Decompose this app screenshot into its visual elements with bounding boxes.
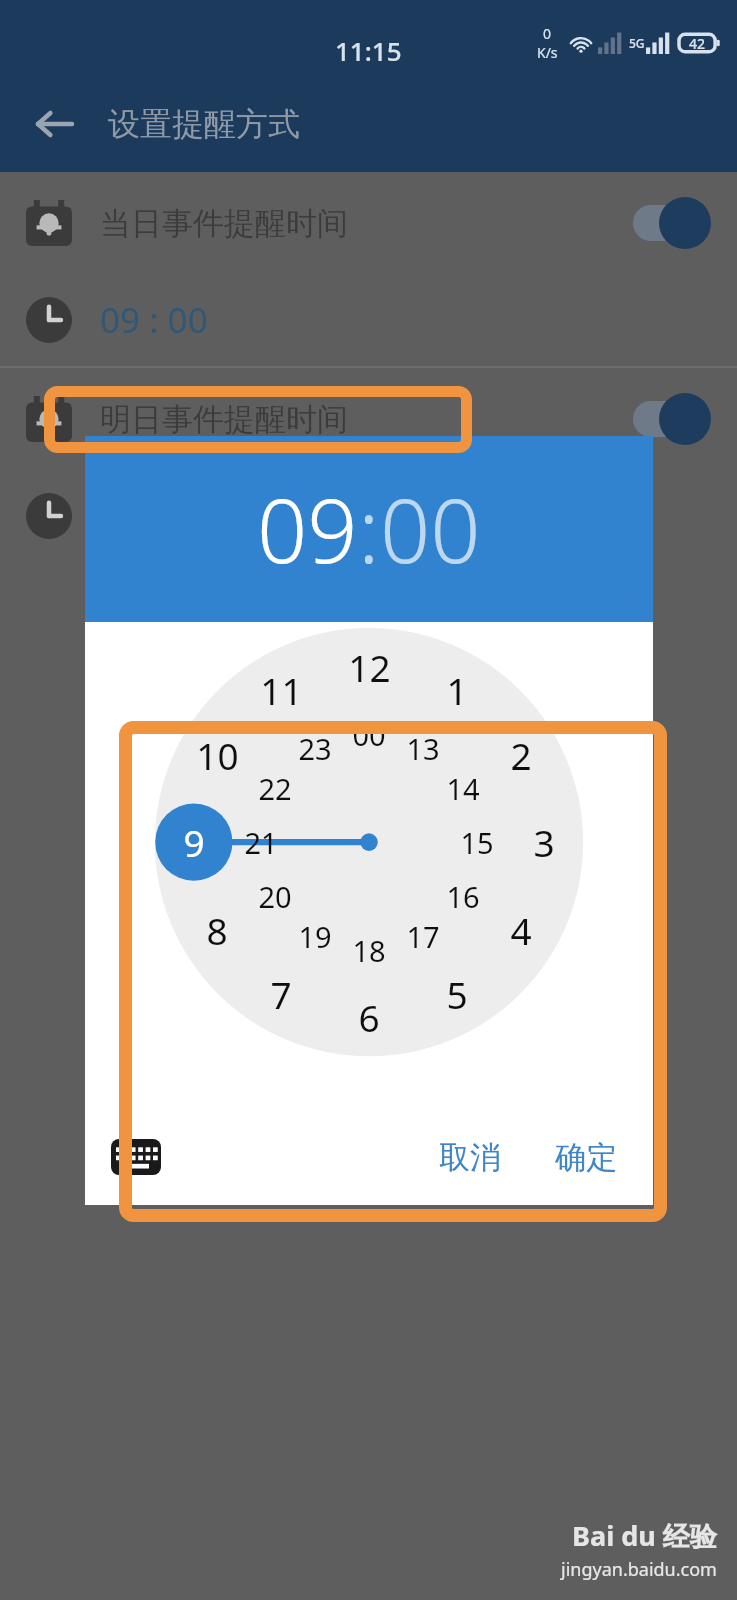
button[interactable]: 确定: [541, 1126, 631, 1189]
button[interactable]: 22: [239, 762, 311, 814]
button[interactable]: 7: [245, 964, 317, 1024]
staticText: 42: [689, 34, 706, 53]
button[interactable]: 3: [508, 812, 580, 872]
button[interactable]: 09 : 00: [0, 274, 737, 366]
button[interactable]: 20: [239, 870, 311, 922]
staticText: 11: [260, 665, 303, 715]
staticText: 16: [446, 877, 480, 916]
staticText: 21: [244, 823, 278, 862]
staticText: Bai du 经验: [572, 1517, 717, 1554]
staticText: 11:15: [335, 33, 402, 68]
staticText: 0: [543, 24, 552, 43]
staticText: :: [358, 469, 380, 589]
staticText: 3: [533, 817, 555, 867]
staticText: 10: [196, 730, 239, 780]
staticText: 8: [206, 905, 228, 955]
staticText: 13: [406, 729, 440, 768]
button[interactable]: 取消: [425, 1126, 515, 1189]
staticText: 18: [352, 931, 386, 970]
staticText: 17: [406, 917, 440, 956]
button[interactable]: Back: [24, 94, 84, 154]
staticText: 22: [258, 769, 292, 808]
button[interactable]: 6: [333, 987, 405, 1047]
button[interactable]: 12: [333, 637, 405, 697]
staticText: 23: [298, 729, 332, 768]
staticText: 14: [446, 769, 480, 808]
staticText: K/s: [537, 43, 558, 62]
staticText: 5G: [629, 35, 645, 51]
staticText: 7: [270, 969, 292, 1019]
staticText: 00: [352, 715, 386, 754]
staticText: 15: [460, 823, 494, 862]
staticText: 明日事件提醒时间: [100, 400, 348, 439]
staticText: 20: [258, 877, 292, 916]
button[interactable]: 17: [387, 910, 459, 962]
button[interactable]: 09 : 00: [0, 470, 737, 562]
staticText: 1: [446, 665, 468, 715]
button[interactable]: 15: [441, 816, 513, 868]
button[interactable]: 19: [279, 910, 351, 962]
button[interactable]: 5: [421, 964, 493, 1024]
button[interactable]: 10: [181, 725, 253, 785]
button[interactable]: 18: [333, 924, 405, 976]
button[interactable]: 11: [245, 660, 317, 720]
staticText: 4: [510, 905, 532, 955]
staticText: 19: [298, 917, 332, 956]
button[interactable]: 16: [427, 870, 499, 922]
staticText: 设置提醒方式: [108, 104, 300, 144]
button[interactable]: 4: [485, 900, 557, 960]
button[interactable]: [615, 194, 711, 252]
button[interactable]: Switch to text input: [107, 1128, 165, 1186]
button[interactable]: 9: [158, 812, 230, 872]
button[interactable]: 2: [485, 725, 557, 785]
staticText: 2: [510, 730, 532, 780]
button[interactable]: 8: [181, 900, 253, 960]
button[interactable]: 09: [257, 469, 358, 589]
staticText: 9: [183, 817, 205, 867]
staticText: 当日事件提醒时间: [100, 204, 348, 243]
staticText: 09 : 00: [100, 296, 208, 344]
button[interactable]: 23: [279, 722, 351, 774]
staticText: 6: [358, 992, 380, 1042]
button[interactable]: 当日事件提醒时间: [0, 172, 737, 274]
staticText: 取消: [439, 1138, 501, 1177]
button[interactable]: 00: [380, 469, 481, 589]
button[interactable]: 13: [387, 722, 459, 774]
staticText: 确定: [555, 1138, 617, 1177]
staticText: 5: [446, 969, 468, 1019]
staticText: jingyan.baidu.com: [561, 1557, 717, 1582]
button[interactable]: 14: [427, 762, 499, 814]
button[interactable]: 1: [421, 660, 493, 720]
button[interactable]: 00: [333, 708, 405, 760]
button[interactable]: [615, 390, 711, 448]
button[interactable]: 明日事件提醒时间: [0, 368, 737, 470]
staticText: 12: [348, 642, 391, 692]
button[interactable]: 21: [225, 816, 297, 868]
